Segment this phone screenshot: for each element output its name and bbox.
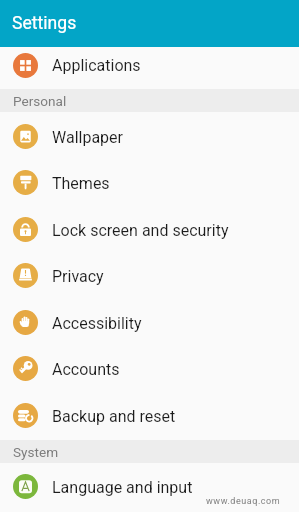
button[interactable]: Language and input xyxy=(0,463,299,510)
button[interactable]: Privacy xyxy=(0,251,299,298)
staticText: System xyxy=(13,444,59,460)
button[interactable]: Wallpaper xyxy=(0,112,299,159)
staticText: Accessibility xyxy=(52,314,142,333)
button[interactable]: Accounts xyxy=(0,344,299,391)
staticText: Language and input xyxy=(52,478,193,497)
staticText: Themes xyxy=(52,174,110,193)
staticText: Backup and reset xyxy=(52,407,176,426)
staticText: Settings xyxy=(12,13,77,34)
button[interactable]: Accessibility xyxy=(0,298,299,345)
staticText: Wallpaper xyxy=(52,128,123,147)
staticText: Privacy xyxy=(52,267,104,286)
staticText: Accounts xyxy=(52,360,120,379)
staticText: Applications xyxy=(52,56,141,75)
button[interactable]: Lock screen and security xyxy=(0,205,299,252)
staticText: www.deuaq.com xyxy=(206,496,281,507)
staticText: Lock screen and security xyxy=(52,221,229,240)
button[interactable]: Applications xyxy=(0,47,299,89)
button[interactable]: Themes xyxy=(0,158,299,205)
staticText: Personal xyxy=(13,93,67,109)
button[interactable]: Backup and reset xyxy=(0,391,299,438)
